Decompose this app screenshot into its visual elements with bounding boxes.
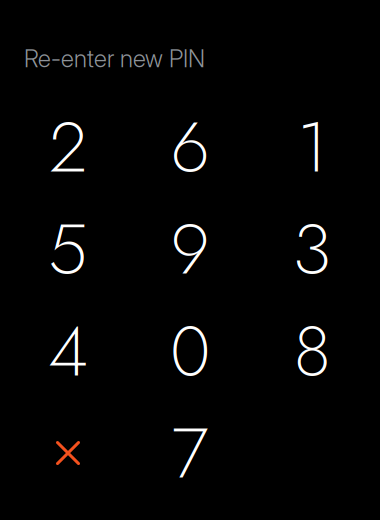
staticText: 8: [293, 300, 330, 402]
button[interactable]: 6: [129, 96, 251, 198]
staticText: 9: [170, 198, 209, 300]
staticText: 3: [292, 198, 331, 300]
staticText: 2: [49, 96, 87, 198]
button[interactable]: 2: [7, 96, 129, 198]
staticText: 6: [170, 96, 209, 198]
button[interactable]: 4: [7, 300, 129, 402]
staticText: 5: [48, 198, 88, 300]
staticText: 4: [48, 300, 88, 402]
staticText: 7: [171, 402, 208, 504]
staticText: 1: [297, 96, 327, 198]
button[interactable]: Delete: [7, 402, 129, 504]
button[interactable]: 3: [251, 198, 373, 300]
staticText: 0: [170, 300, 210, 402]
button[interactable]: 0: [129, 300, 251, 402]
button[interactable]: 5: [7, 198, 129, 300]
button[interactable]: 8: [251, 300, 373, 402]
button[interactable]: 7: [129, 402, 251, 504]
button[interactable]: 1: [251, 96, 373, 198]
button[interactable]: 9: [129, 198, 251, 300]
staticText: Re-enter new PIN: [24, 44, 205, 73]
